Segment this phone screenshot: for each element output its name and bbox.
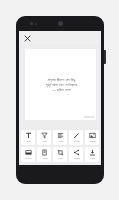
button[interactable]: Crop <box>53 147 67 162</box>
button[interactable]: Share <box>69 147 83 162</box>
button[interactable]: Image <box>85 130 99 145</box>
button[interactable]: মানুষের জীবনে এমন কিছু মুহূর্ত আসে যখন স… <box>25 49 96 120</box>
button[interactable]: Page <box>37 147 51 162</box>
button[interactable]: Color <box>21 147 35 162</box>
staticText: Color <box>26 157 32 160</box>
button[interactable]: Save <box>85 147 99 162</box>
staticText: Text <box>26 140 31 143</box>
staticText: Font <box>42 140 47 143</box>
staticText: Save <box>90 157 95 160</box>
staticText: Page <box>42 157 48 160</box>
staticText: Crop <box>58 157 63 160</box>
staticText: Share <box>74 157 80 160</box>
button[interactable]: Text <box>21 130 35 145</box>
staticText: Image <box>89 140 96 143</box>
button[interactable]: Font <box>37 130 51 145</box>
button[interactable]: Draw <box>69 130 83 145</box>
button[interactable]: Align <box>53 130 67 145</box>
staticText: মানুষের জীবনে এমন কিছু মুহূর্ত আসে যখন স… <box>46 77 77 92</box>
staticText: Align <box>58 140 64 143</box>
staticText: Draw <box>74 140 80 143</box>
button[interactable]: Close <box>22 33 32 43</box>
